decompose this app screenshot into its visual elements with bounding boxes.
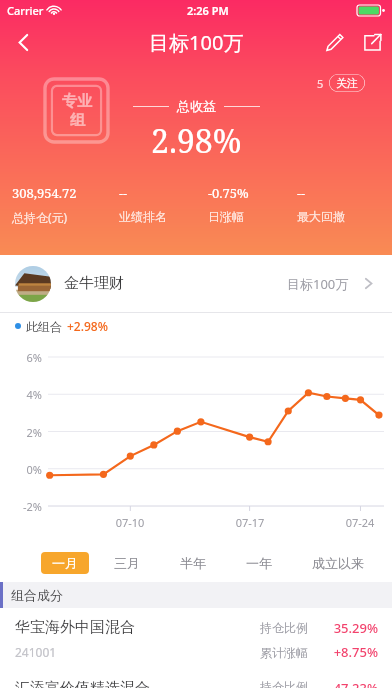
staticText: --: [297, 184, 306, 202]
staticText: -0.75%: [208, 184, 249, 202]
button[interactable]: Back: [0, 20, 46, 64]
staticText: 关注: [336, 76, 358, 90]
staticText: 专业: [62, 92, 92, 111]
staticText: -2%: [14, 499, 42, 514]
staticText: 累计涨幅: [260, 645, 308, 660]
staticText: 07-17: [229, 515, 271, 530]
staticText: 此组合: [26, 319, 62, 334]
staticText: --: [119, 184, 128, 202]
staticText: 一年: [246, 555, 272, 571]
staticText: 6%: [14, 350, 42, 365]
staticText: 持仓比例: [260, 620, 308, 635]
staticText: 持仓比例: [260, 679, 308, 688]
staticText: 三月: [114, 555, 140, 571]
staticText: 07-24: [339, 515, 381, 530]
staticText: Carrier: [7, 3, 44, 18]
button[interactable]: 三月: [103, 552, 151, 574]
staticText: 0%: [14, 462, 42, 477]
staticText: 总收益: [177, 98, 216, 114]
staticText: 2%: [14, 425, 42, 440]
staticText: 汇添富价值精选混合: [15, 679, 150, 688]
staticText: 4%: [14, 387, 42, 402]
button[interactable]: 汇添富价值精选混合: [0, 669, 392, 696]
staticText: 日涨幅: [208, 209, 244, 224]
staticText: 一月: [52, 555, 78, 571]
staticText: 组合成分: [11, 587, 63, 603]
button[interactable]: 半年: [169, 552, 217, 574]
staticText: 47.23%: [324, 679, 378, 688]
staticText: +2.98%: [67, 318, 108, 334]
staticText: 目标100万: [149, 29, 244, 56]
button[interactable]: 华宝海外中国混合: [0, 608, 392, 669]
button[interactable]: 成立以来: [301, 552, 375, 574]
staticText: 总持仓(元): [12, 209, 68, 225]
staticText: 业绩排名: [119, 209, 167, 224]
staticText: 成立以来: [312, 555, 364, 571]
staticText: 最大回撤: [297, 209, 345, 224]
button[interactable]: Edit: [316, 24, 352, 60]
staticText: 半年: [180, 555, 206, 571]
button[interactable]: 一月: [41, 552, 89, 574]
staticText: 2:26 PM: [187, 3, 229, 18]
staticText: 金牛理财: [64, 274, 124, 293]
button[interactable]: 金牛理财: [0, 255, 392, 312]
staticText: 308,954.72: [12, 184, 77, 202]
staticText: 241001: [15, 644, 57, 660]
staticText: 5: [317, 76, 324, 91]
staticText: 2.98%: [151, 119, 242, 163]
button[interactable]: 关注: [329, 74, 365, 92]
staticText: 华宝海外中国混合: [15, 618, 135, 637]
staticText: +8.75%: [324, 643, 378, 661]
staticText: 07-10: [109, 515, 151, 530]
staticText: 组: [70, 111, 85, 130]
button[interactable]: 一年: [235, 552, 283, 574]
staticText: 35.29%: [324, 619, 378, 637]
staticText: 目标100万: [287, 275, 349, 293]
button[interactable]: Share: [352, 22, 392, 62]
